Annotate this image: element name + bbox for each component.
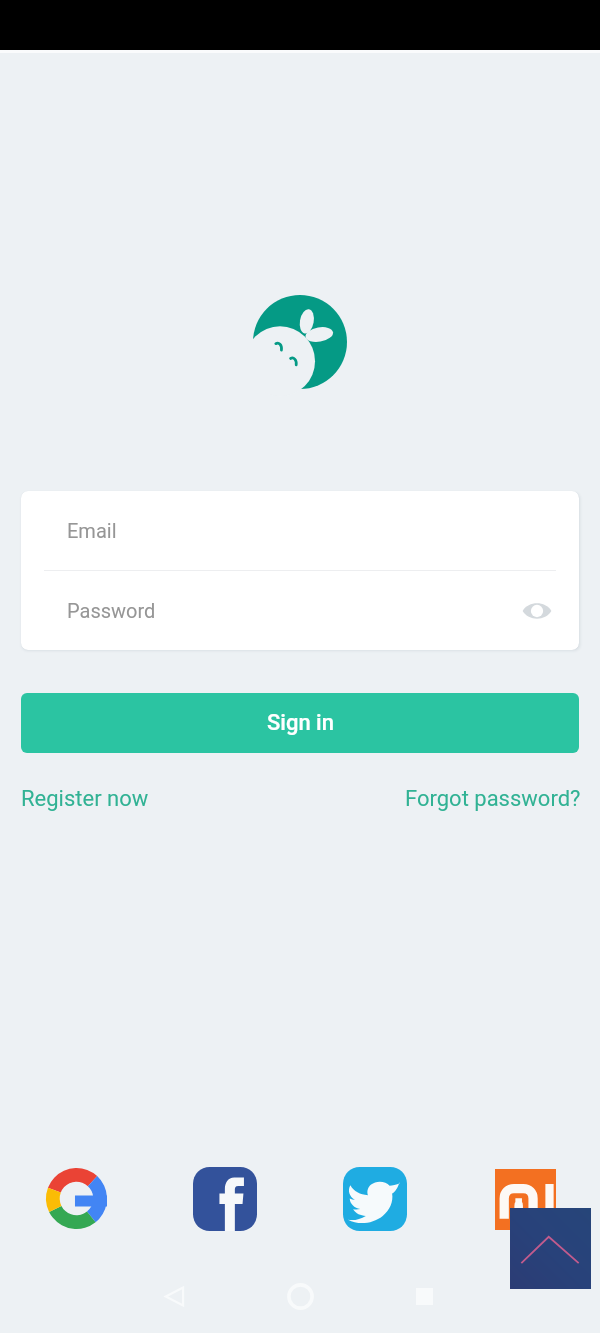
button[interactable]: Sign in with Mi [495,1169,556,1230]
button[interactable]: Sign in with Google [44,1166,108,1230]
button[interactable]: Password [21,571,579,650]
staticText: Password [67,599,156,622]
button[interactable]: Sign in with Facebook [193,1167,257,1231]
staticText: Email [67,519,117,542]
staticText: Sign in [267,710,334,736]
button[interactable]: Email [21,491,579,570]
button[interactable]: Register now [21,786,149,812]
button[interactable]: Home [276,1272,324,1320]
button[interactable]: Sign in with Twitter [343,1167,407,1231]
button[interactable]: Recents [400,1272,448,1320]
button[interactable]: Show password [515,589,559,633]
button[interactable]: Sign in [21,693,579,753]
button[interactable]: Forgot password? [405,786,581,812]
